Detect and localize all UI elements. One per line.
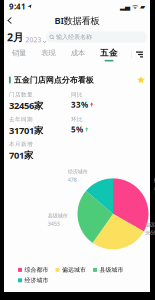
button[interactable]: Filter: [132, 48, 147, 60]
staticText: 478: [67, 176, 76, 184]
staticText: 3659: [144, 229, 155, 237]
staticText: 5%: [71, 124, 83, 135]
staticText: 经济城市: [24, 277, 48, 284]
staticText: 门店数量: [9, 91, 33, 98]
staticText: ▂▄ ᯤ ▰: [120, 2, 145, 11]
staticText: 偏远城市: [62, 266, 86, 274]
staticText: 表现: [41, 48, 55, 58]
staticText: 701家: [9, 149, 33, 161]
button[interactable]: Back: [4, 14, 15, 26]
staticText: 偏远城市: [144, 221, 155, 228]
staticText: 本月新增: [9, 141, 33, 148]
staticText: 3453: [47, 220, 59, 228]
staticText: 33%: [71, 99, 88, 110]
staticText: 32456家: [9, 99, 43, 112]
staticText: 五金门店网点分布看板: [14, 75, 94, 85]
staticText: 同比: [71, 91, 83, 98]
staticText: 经济城市: [67, 168, 87, 175]
button[interactable]: 成本: [69, 48, 87, 61]
button[interactable]: 表现: [39, 48, 57, 61]
staticText: BI数据看板: [54, 14, 99, 27]
staticText: 成本: [71, 48, 85, 58]
staticText: 销量: [12, 48, 26, 58]
staticText: 9:41: [9, 1, 26, 12]
button[interactable]: 2月: [7, 30, 46, 44]
staticText: 县级城市: [47, 212, 67, 219]
staticText: 去年同期: [9, 116, 33, 123]
button[interactable]: 输入经表名称: [46, 31, 147, 42]
staticText: 县级城市: [99, 266, 123, 274]
staticText: 环比: [71, 116, 83, 123]
staticText: 综合都市: [24, 266, 48, 274]
staticText: 2023: [25, 35, 41, 44]
button[interactable]: Favourite: [137, 76, 145, 84]
staticText: 2月: [7, 30, 24, 44]
button[interactable]: 销量: [10, 48, 28, 61]
staticText: 输入经表名称: [56, 33, 92, 41]
staticText: 4218: [153, 185, 155, 193]
button[interactable]: 五金: [98, 47, 120, 61]
staticText: 综合都市: [153, 177, 155, 184]
staticText: 五金: [100, 47, 118, 58]
staticText: 31701家: [9, 124, 43, 137]
